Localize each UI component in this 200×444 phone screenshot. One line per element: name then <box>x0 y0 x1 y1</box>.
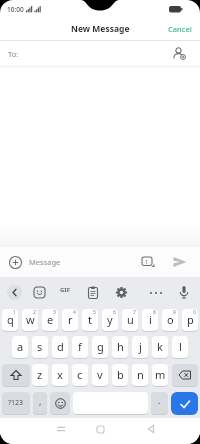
staticText: 7 <box>133 309 136 316</box>
button[interactable]: l <box>172 336 188 358</box>
button[interactable] <box>7 285 22 300</box>
staticText: New Message <box>71 23 130 35</box>
staticText: 2 <box>33 309 36 316</box>
button[interactable]: Cancel <box>168 24 192 34</box>
staticText: Cancel <box>168 24 192 34</box>
staticText: p <box>187 312 194 327</box>
staticText: n <box>137 367 144 382</box>
button[interactable] <box>146 424 156 434</box>
staticText: a <box>17 339 24 354</box>
staticText: v <box>97 367 103 382</box>
staticText: 10:00 <box>7 5 24 14</box>
staticText: Message <box>29 257 61 267</box>
button[interactable]: r <box>62 309 78 331</box>
button[interactable]: j <box>132 336 148 358</box>
button[interactable]: i <box>142 309 158 331</box>
staticText: 3 <box>53 309 56 316</box>
staticText: f <box>78 339 82 354</box>
button[interactable]: To: <box>0 41 200 66</box>
staticText: 4 <box>73 309 76 316</box>
staticText: d <box>57 339 64 354</box>
button[interactable] <box>172 254 188 270</box>
staticText: q <box>7 312 14 327</box>
staticText: 6 <box>113 309 116 316</box>
button[interactable] <box>171 392 198 415</box>
button[interactable]: f <box>72 336 88 358</box>
button[interactable] <box>50 392 70 414</box>
staticText: i <box>149 312 152 327</box>
staticText: , <box>39 395 42 407</box>
button[interactable]: q <box>2 309 18 331</box>
staticText: b <box>117 367 124 382</box>
staticText: . <box>158 394 161 406</box>
button[interactable]: w <box>22 309 38 331</box>
button[interactable]: a <box>12 336 28 358</box>
button[interactable]: g <box>92 336 108 358</box>
button[interactable] <box>2 364 30 386</box>
staticText: To: <box>8 49 19 59</box>
button[interactable]: GIF <box>60 286 70 294</box>
button[interactable]: t <box>82 309 98 331</box>
staticText: ?123 <box>8 398 24 408</box>
button[interactable]: b <box>112 364 128 386</box>
staticText: s <box>37 339 43 354</box>
button[interactable]: o <box>162 309 178 331</box>
staticText: k <box>157 339 163 354</box>
button[interactable]: m <box>152 364 168 386</box>
staticText: g <box>97 339 104 354</box>
staticText: w <box>26 312 35 327</box>
button[interactable]: p <box>182 309 198 331</box>
staticText: GIF <box>60 286 70 294</box>
button[interactable]: v <box>92 364 108 386</box>
staticText: e <box>47 312 54 327</box>
button[interactable]: c <box>72 364 88 386</box>
button[interactable]: d <box>52 336 68 358</box>
staticText: t <box>88 312 92 327</box>
staticText: y <box>107 312 113 327</box>
button[interactable]: . <box>151 392 168 414</box>
staticText: u <box>127 312 134 327</box>
staticText: m <box>155 367 166 382</box>
staticText: 0 <box>193 309 196 316</box>
button[interactable]: , <box>33 392 47 414</box>
button[interactable]: y <box>102 309 118 331</box>
button[interactable]: s <box>32 336 48 358</box>
staticText: j <box>139 339 142 354</box>
staticText: r <box>68 312 73 327</box>
staticText: c <box>77 367 83 382</box>
button[interactable] <box>172 364 198 386</box>
button[interactable]: n <box>132 364 148 386</box>
button[interactable] <box>33 286 46 299</box>
button[interactable] <box>115 286 128 299</box>
staticText: 5 <box>93 309 96 316</box>
staticText: 9 <box>173 309 176 316</box>
button[interactable] <box>9 256 22 269</box>
staticText: l <box>179 339 182 354</box>
staticText: o <box>167 312 174 327</box>
staticText: x <box>57 367 63 382</box>
staticText: 1 <box>13 309 16 316</box>
staticText: 8 <box>153 309 156 316</box>
button[interactable] <box>87 286 99 299</box>
button[interactable]: u <box>122 309 138 331</box>
button[interactable]: z <box>32 364 48 386</box>
button[interactable]: ?123 <box>2 392 30 414</box>
button[interactable]: k <box>152 336 168 358</box>
button[interactable] <box>178 285 190 300</box>
button[interactable] <box>56 424 66 434</box>
staticText: h <box>117 339 124 354</box>
staticText: 1 <box>145 258 149 265</box>
button[interactable] <box>96 425 105 434</box>
button[interactable]: h <box>112 336 128 358</box>
button[interactable]: x <box>52 364 68 386</box>
button[interactable]: e <box>42 309 58 331</box>
staticText: z <box>37 367 43 382</box>
